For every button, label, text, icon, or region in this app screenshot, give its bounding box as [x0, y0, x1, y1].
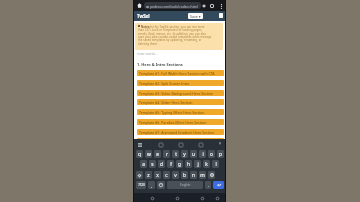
button[interactable]: u: [190, 150, 197, 158]
button[interactable]: Stickers: [178, 142, 183, 147]
staticText: m: [200, 172, 205, 179]
button[interactable]: Menu: [219, 13, 223, 18]
staticText: g: [178, 161, 181, 168]
staticText: 1. Hero & Intro Sections: [137, 62, 183, 67]
button[interactable]: Template #8: Minimal Centered Hero Secti…: [137, 138, 224, 144]
button[interactable]: l: [212, 160, 219, 168]
staticText: k: [205, 161, 208, 168]
staticText: ,: [151, 183, 152, 188]
button[interactable]: e: [154, 150, 161, 158]
staticText: w: [147, 151, 151, 158]
button[interactable]: ?123: [136, 181, 146, 189]
button[interactable]: w: [145, 150, 152, 158]
staticText: h: [187, 161, 190, 168]
staticText: e: [156, 151, 159, 158]
button[interactable]: h: [185, 160, 192, 168]
button[interactable]: Backspace: [208, 171, 215, 179]
button[interactable]: Template #1: Full Width Hero Section wit…: [137, 70, 224, 76]
staticText: Notes:: [141, 25, 151, 28]
button[interactable]: Recents: [200, 196, 205, 201]
button[interactable]: n: [190, 171, 197, 179]
staticText: deleting them.: [138, 42, 158, 45]
button[interactable]: Home: [175, 196, 180, 201]
button[interactable]: podeco.com/tools/codecc.html: [144, 2, 201, 9]
staticText: n: [192, 172, 195, 179]
staticText: b: [183, 172, 186, 179]
staticText: Template #6: Parallax Effect Hero Sectio…: [139, 120, 207, 125]
staticText: l: [215, 161, 217, 168]
staticText: j: [197, 161, 199, 168]
staticText: r: [166, 151, 168, 158]
staticText: enter search...: [137, 52, 158, 56]
staticText: Template #5: Typing Effect Hero Section: [139, 110, 205, 115]
staticText: u: [192, 151, 195, 158]
button[interactable]: New tab: [201, 3, 207, 9]
button[interactable]: Template #3: Video Background Hero Secti…: [137, 90, 224, 96]
button[interactable]: d: [158, 160, 165, 168]
staticText: t: [175, 151, 177, 158]
button[interactable]: v: [172, 171, 179, 179]
button[interactable]: q: [136, 150, 143, 158]
button[interactable]: s: [149, 160, 156, 168]
staticText: y: [183, 151, 186, 158]
button[interactable]: Tabs: [209, 3, 215, 9]
staticText: Template #3: Video Background Hero Secti…: [139, 91, 214, 96]
staticText: z: [147, 172, 150, 179]
button[interactable]: .: [205, 181, 211, 189]
button[interactable]: Save ▾: [188, 13, 203, 19]
staticText: p: [219, 151, 222, 158]
button[interactable]: i: [199, 150, 206, 158]
staticText: f: [170, 161, 172, 168]
button[interactable]: b: [181, 171, 188, 179]
button[interactable]: More options: [218, 3, 224, 9]
staticText: Template #2: Split Screen Intro: [139, 81, 190, 86]
staticText: Template #7: Animated Gradient Hero Sect…: [139, 130, 215, 135]
staticText: TwSxl: [137, 13, 150, 19]
button[interactable]: Template #4: Slider Hero Section: [137, 99, 224, 105]
button[interactable]: k: [203, 160, 210, 168]
button[interactable]: Home: [136, 2, 143, 9]
staticText: d: [160, 161, 163, 168]
button[interactable]: x: [154, 171, 161, 179]
button[interactable]: c: [163, 171, 170, 179]
button[interactable]: j: [194, 160, 201, 168]
button[interactable]: a: [140, 160, 147, 168]
button[interactable]: Keyboard switcher: [215, 196, 220, 201]
staticText: English: [180, 183, 191, 187]
button[interactable]: y: [181, 150, 188, 158]
staticText: Template #4: Slider Hero Section: [139, 100, 193, 105]
button[interactable]: English: [167, 181, 203, 189]
staticText: podeco.com/tools/codecc.html: [150, 4, 198, 8]
staticText: x: [156, 172, 159, 179]
button[interactable]: Emoji: [157, 181, 165, 189]
staticText: emails, fbad, menus, etc. In addition, y…: [138, 32, 207, 35]
button[interactable]: Shift: [136, 171, 143, 179]
staticText: i: [202, 151, 204, 158]
button[interactable]: t: [172, 150, 179, 158]
staticText: v: [174, 172, 177, 179]
staticText: Save ▾: [190, 14, 201, 19]
button[interactable]: f: [167, 160, 174, 168]
staticText: In this Toolkit section, you can see mor…: [150, 25, 205, 28]
button[interactable]: g: [176, 160, 183, 168]
button[interactable]: Template #7: Animated Gradient Hero Sect…: [137, 129, 224, 135]
button[interactable]: Back: [150, 196, 155, 201]
button[interactable]: p: [217, 150, 224, 158]
staticText: q: [138, 151, 141, 158]
button[interactable]: Clipboard: [158, 142, 163, 147]
button[interactable]: ,: [148, 181, 155, 189]
staticText: Template #1: Full Width Hero Section wit…: [139, 71, 215, 76]
button[interactable]: Template #2: Split Screen Intro: [137, 80, 224, 86]
button[interactable]: Template #6: Parallax Effect Hero Sectio…: [137, 119, 224, 125]
button[interactable]: z: [145, 171, 152, 179]
button[interactable]: Keyboard menu: [137, 142, 142, 147]
button[interactable]: Mic: [218, 142, 222, 146]
staticText: s: [151, 161, 154, 168]
staticText: o: [210, 151, 213, 158]
button[interactable]: Enter: [213, 181, 224, 189]
button[interactable]: Settings: [198, 142, 203, 147]
button[interactable]: m: [199, 171, 206, 179]
button[interactable]: o: [208, 150, 215, 158]
button[interactable]: r: [163, 150, 170, 158]
button[interactable]: Template #5: Typing Effect Hero Section: [137, 109, 224, 115]
